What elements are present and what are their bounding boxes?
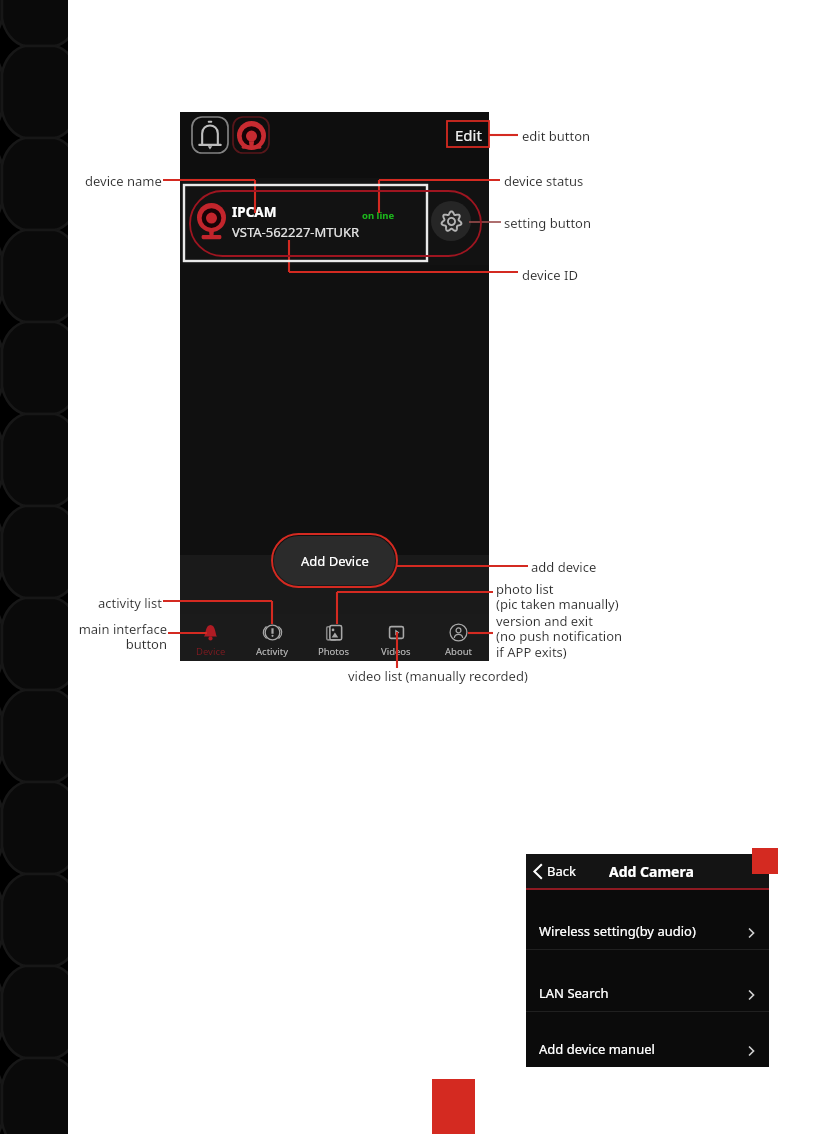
staticText: edit button [522,127,737,145]
staticText: main interface button [63,620,167,653]
button[interactable]: Add device manuel [526,1012,769,1067]
button[interactable]: Alerts [191,116,229,154]
staticText: Add Device [301,552,369,570]
button[interactable]: Devices [232,116,270,154]
button[interactable]: Photos [303,614,365,661]
button[interactable]: Edit [448,121,489,149]
staticText: VSTA-562227-MTUKR [232,223,360,241]
staticText: About [445,645,472,658]
staticText: Add device manuel [539,1040,655,1058]
staticText: Edit [455,125,482,145]
button[interactable]: Videos [365,614,427,661]
button[interactable]: IPCAM [180,178,489,265]
staticText: device status [504,172,719,190]
staticText: video list (manually recorded) [348,667,608,685]
button[interactable]: Back [530,858,578,884]
staticText: Wireless setting(by audio) [539,922,696,940]
staticText: Add Camera [609,862,694,881]
staticText: Photos [318,645,350,658]
staticText: add device [531,558,746,576]
staticText: photo list (pic taken manually) [496,580,711,613]
button[interactable]: Device [180,614,241,661]
staticText: device ID [522,266,737,284]
staticText: IPCAM [232,203,277,221]
staticText: Videos [381,645,411,658]
button[interactable]: LAN Search [526,950,769,1011]
staticText: setting button [504,214,719,232]
button[interactable]: Add Device [274,536,395,585]
staticText: Activity [256,645,289,658]
button[interactable]: Wireless setting(by audio) [526,890,769,949]
button[interactable]: About [427,614,489,661]
staticText: version and exit (no push notification i… [496,612,711,661]
staticText: device name [85,172,300,190]
staticText: activity list [98,594,313,612]
staticText: on line [362,209,395,222]
button[interactable]: Activity [241,614,303,661]
staticText: Back [547,862,576,880]
button[interactable]: Settings [431,201,471,241]
staticText: LAN Search [539,984,609,1002]
staticText: Device [196,645,226,658]
